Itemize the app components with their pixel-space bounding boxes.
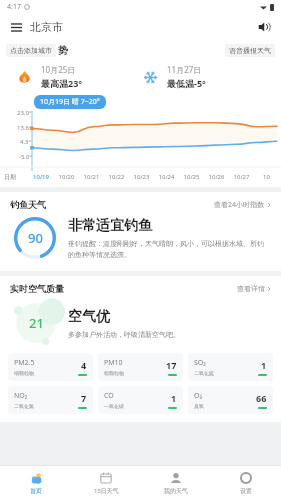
button[interactable]: NO₂ (8, 386, 93, 414)
staticText: 10/25 (179, 173, 204, 181)
staticText: 查看详情 (237, 284, 265, 293)
staticText: 90 (28, 229, 43, 247)
button[interactable]: 点击添加城市 (6, 44, 56, 57)
button[interactable]: 15日天气 (71, 466, 141, 500)
staticText: 10/21 (79, 173, 104, 181)
staticText: 10月19日 晴 7~20° (40, 97, 100, 107)
staticText: 细颗粒物 (14, 370, 34, 376)
button[interactable]: 首页 (0, 466, 71, 500)
staticText: 10/22 (104, 173, 129, 181)
staticText: 13.6° (17, 124, 32, 132)
staticText: 23.0° (17, 109, 32, 117)
staticText: O₃ (194, 391, 202, 401)
staticText: 非常适宜钓鱼 (68, 217, 152, 235)
button[interactable]: 语音播报天气 (255, 18, 273, 36)
staticText: 空气优 (68, 308, 110, 326)
staticText: 10月25日 (41, 64, 76, 75)
staticText: CO (104, 391, 114, 401)
staticText: 10/19 (28, 173, 54, 181)
button[interactable]: 北京市 (30, 20, 63, 34)
staticText: -5.0° (19, 153, 32, 161)
staticText: 实时空气质量 (10, 283, 64, 294)
staticText: SO₂ (194, 358, 206, 368)
staticText: 查看24小时指数 (214, 200, 265, 210)
button[interactable]: 11月27日 (140, 64, 267, 89)
staticText: 4 (81, 359, 87, 371)
staticText: PM2.5 (14, 358, 35, 368)
staticText: 10 (254, 173, 279, 181)
staticText: 首页 (30, 487, 42, 495)
button[interactable]: Menu (8, 19, 24, 35)
button[interactable]: O₃ (188, 386, 273, 414)
staticText: 钓鱼天气 (10, 199, 46, 210)
staticText: NO₂ (14, 391, 28, 401)
staticText: 粗颗粒物 (104, 370, 124, 376)
staticText: 66 (256, 392, 267, 404)
staticText: 点击添加城市 (10, 46, 52, 55)
button[interactable]: 我的天气 (141, 466, 211, 500)
button[interactable]: CO (98, 386, 183, 414)
staticText: 日期 (4, 173, 28, 181)
staticText: 多参加户外活动，呼吸清新空气吧。 (68, 330, 180, 339)
staticText: 我的天气 (164, 487, 188, 495)
staticText: 21 (29, 314, 44, 332)
staticText: 10/24 (154, 173, 179, 181)
button[interactable]: 查看详情 (237, 284, 271, 293)
staticText: 最低温-5° (167, 77, 206, 89)
staticText: 二氧化硫 (194, 370, 214, 376)
staticText: 10/20 (54, 173, 79, 181)
staticText: 10/26 (204, 173, 229, 181)
button[interactable]: 查看24小时指数 (214, 200, 271, 210)
staticText: 最高温23° (41, 77, 83, 89)
button[interactable]: 语音播报天气 (225, 44, 275, 57)
staticText: 4:17 (7, 2, 21, 12)
staticText: 10/27 (229, 173, 254, 181)
button[interactable]: PM2.5 (8, 353, 93, 381)
button[interactable]: SO₂ (188, 353, 273, 381)
staticText: 设置 (240, 487, 252, 495)
staticText: 臭氧 (194, 403, 204, 409)
staticText: 7 (81, 392, 87, 404)
staticText: 11月27日 (167, 64, 202, 75)
staticText: 15日天气 (94, 487, 119, 495)
button[interactable]: 10月25日 (14, 64, 140, 89)
staticText: 1 (171, 392, 177, 404)
staticText: 17 (166, 359, 177, 371)
staticText: 10/23 (129, 173, 154, 181)
staticText: 一氧化碳 (104, 403, 124, 409)
staticText: 4.3° (20, 138, 32, 146)
staticText: 垂钓提醒：温度刚刚好，天气晴朗，风小，可以根据水域、所钓的鱼种等情况选漂。 (68, 239, 269, 259)
staticText: 势 (58, 44, 68, 57)
staticText: 语音播报天气 (229, 46, 271, 55)
button[interactable]: 10月19日 晴 7~20° (34, 95, 106, 109)
staticText: 1 (261, 359, 267, 371)
staticText: 二氧化氮 (14, 403, 34, 409)
button[interactable]: 设置 (211, 466, 281, 500)
button[interactable]: PM10 (98, 353, 183, 381)
staticText: PM10 (104, 358, 123, 368)
